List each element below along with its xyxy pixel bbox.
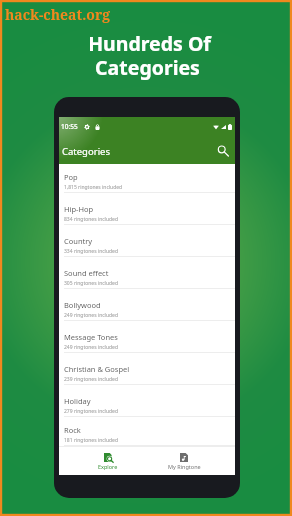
button[interactable]: Explore [88, 447, 128, 475]
staticText: Country [64, 236, 93, 246]
staticText: 10:55 [61, 122, 78, 131]
button[interactable]: Rock [59, 414, 235, 446]
staticText: Explore [98, 463, 118, 470]
staticText: hack-cheat.org [5, 5, 111, 24]
staticText: 834 ringtones included [64, 216, 118, 223]
staticText: Rock [64, 425, 81, 435]
staticText: My Ringtone [168, 463, 201, 470]
button[interactable]: Hip-Hop [59, 193, 235, 225]
staticText: Hundreds Of [88, 30, 211, 57]
button[interactable]: Holiday [59, 385, 235, 417]
staticText: Sound effect [64, 268, 109, 278]
staticText: Message Tones [64, 332, 118, 342]
button[interactable]: Message Tones [59, 321, 235, 353]
button[interactable]: Pop [59, 165, 235, 193]
button[interactable]: Sound effect [59, 257, 235, 289]
staticText: 305 ringtones included [64, 280, 118, 287]
button[interactable]: Search [213, 141, 231, 159]
staticText: 249 ringtones included [64, 312, 118, 319]
button[interactable]: My Ringtone [164, 447, 204, 475]
button[interactable]: Christian & Gospel [59, 353, 235, 385]
staticText: Categories [62, 145, 110, 158]
staticText: Categories [95, 54, 200, 81]
staticText: Bollywood [64, 300, 101, 310]
button[interactable]: Bollywood [59, 289, 235, 321]
staticText: 181 ringtones included [64, 437, 118, 444]
staticText: 334 ringtones included [64, 248, 118, 255]
staticText: Christian & Gospel [64, 364, 130, 374]
staticText: 279 ringtones included [64, 408, 118, 415]
staticText: 249 ringtones included [64, 344, 118, 351]
staticText: Pop [64, 172, 78, 182]
staticText: 239 ringtones included [64, 376, 118, 383]
staticText: Hip-Hop [64, 204, 94, 214]
button[interactable]: Country [59, 225, 235, 257]
staticText: Holiday [64, 396, 91, 406]
staticText: 1,815 ringtones included [64, 184, 123, 191]
